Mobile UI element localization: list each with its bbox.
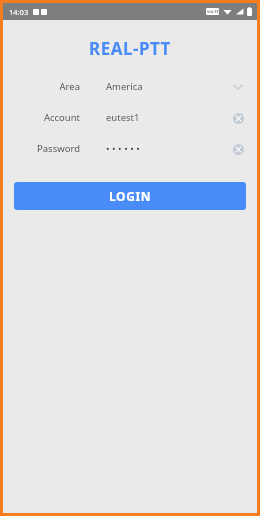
staticText: Account — [43, 111, 80, 124]
button[interactable]: Area — [3, 75, 257, 98]
button[interactable]: Account — [3, 106, 257, 129]
staticText: VoLTE — [207, 9, 219, 14]
staticText: LOGIN — [109, 188, 152, 204]
staticText: Password — [37, 142, 80, 155]
staticText: 14:03 — [9, 7, 29, 17]
button[interactable]: Clear text — [229, 109, 247, 127]
staticText: REAL-PTT — [89, 37, 171, 60]
button[interactable]: Clear text — [229, 140, 247, 158]
staticText: America — [106, 80, 143, 93]
staticText: eutest1 — [106, 111, 140, 124]
button[interactable]: Password — [3, 137, 257, 160]
button[interactable]: Select area — [229, 78, 247, 96]
button[interactable]: LOGIN — [14, 182, 246, 210]
staticText: Area — [59, 80, 80, 93]
staticText: • • • • • • — [106, 142, 140, 155]
